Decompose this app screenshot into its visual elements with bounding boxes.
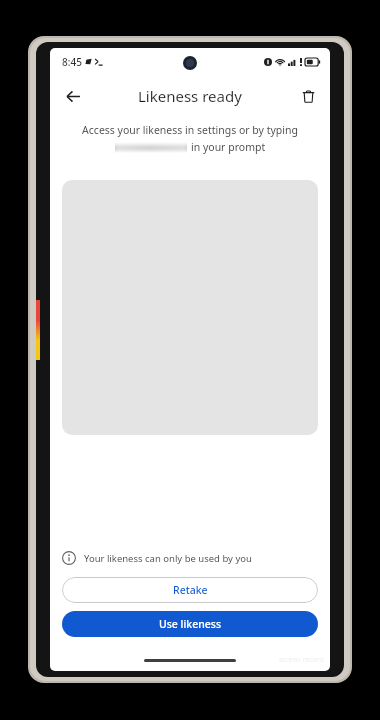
button[interactable]: Use likeness bbox=[62, 611, 318, 637]
staticText: in your prompt bbox=[191, 140, 266, 154]
staticText: screen record bbox=[279, 655, 324, 665]
staticText: Likeness ready bbox=[138, 86, 242, 106]
staticText: Use likeness bbox=[159, 617, 221, 631]
staticText: Access your likeness in settings or by t… bbox=[68, 123, 312, 137]
button[interactable]: Back bbox=[56, 79, 90, 113]
button[interactable]: Delete bbox=[293, 81, 323, 111]
button[interactable]: Retake bbox=[62, 577, 318, 603]
staticText: Retake bbox=[173, 583, 208, 597]
staticText: 8:45 bbox=[62, 55, 82, 69]
staticText: Your likeness can only be used by you bbox=[84, 552, 252, 565]
